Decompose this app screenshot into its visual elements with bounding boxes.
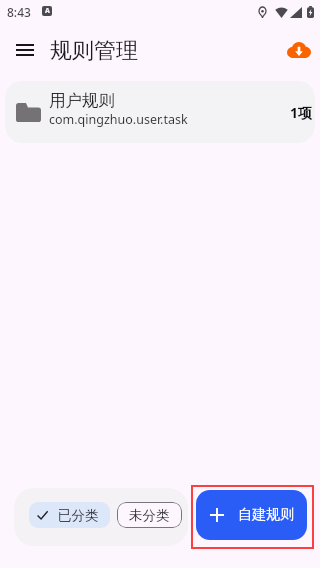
staticText: 已分类	[58, 507, 99, 524]
button[interactable]: 自建规则	[196, 490, 307, 540]
staticText: A	[45, 6, 50, 16]
staticText: 规则管理	[50, 37, 138, 65]
staticText: 自建规则	[238, 506, 294, 524]
staticText: com.qingzhuo.user.task	[49, 111, 188, 128]
staticText: 8:43	[7, 4, 31, 20]
button[interactable]: 用户规则	[5, 81, 315, 143]
staticText: 1项	[290, 103, 313, 122]
button[interactable]: 已分类	[29, 502, 110, 528]
button[interactable]: Download rules	[281, 33, 317, 69]
staticText: 未分类	[129, 507, 170, 524]
button[interactable]: 未分类	[117, 502, 182, 528]
staticText: 用户规则	[49, 90, 115, 111]
button[interactable]: Open navigation menu	[7, 33, 43, 69]
